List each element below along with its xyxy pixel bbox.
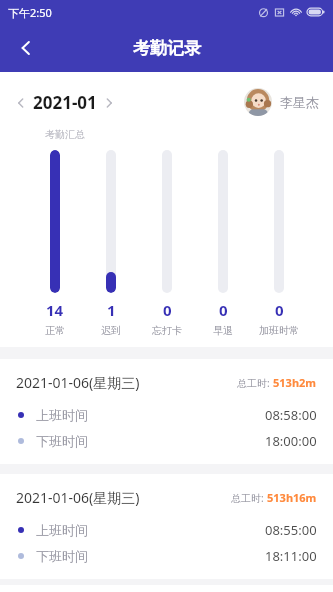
button[interactable]: 2021-01-06(星期三) [0, 359, 333, 464]
staticText: 早退 [213, 324, 233, 337]
other: Previous month [14, 96, 28, 110]
staticText: 513h2m [273, 375, 317, 390]
staticText: 513h16m [267, 490, 317, 505]
other: Next month [102, 96, 116, 110]
staticText: 18:00:00 [265, 432, 317, 450]
staticText: 0 [163, 300, 172, 320]
staticText: 总工时: [237, 376, 273, 390]
staticText: 14 [46, 300, 64, 320]
button[interactable]: Back [8, 30, 44, 66]
staticText: 2021-01-06(星期三) [16, 488, 140, 507]
staticText: 忘打卡 [152, 324, 182, 337]
staticText: 2021-01-06(星期三) [16, 373, 140, 392]
staticText: 18:11:00 [265, 547, 317, 565]
staticText: 上班时间 [36, 522, 88, 538]
staticText: 下班时间 [36, 433, 88, 449]
staticText: 考勤汇总 [45, 128, 85, 141]
staticText: 0 [219, 300, 228, 320]
staticText: 李星杰 [280, 94, 319, 110]
staticText: 0 [275, 300, 284, 320]
button[interactable]: 李星杰 [244, 88, 319, 116]
button[interactable]: Previous month [14, 91, 116, 114]
staticText: 考勤记录 [133, 38, 201, 59]
staticText: 正常 [45, 324, 65, 337]
staticText: 下班时间 [36, 548, 88, 564]
staticText: 1 [107, 300, 116, 320]
button[interactable]: 2021-01-06(星期三) [0, 474, 333, 579]
staticText: 总工时: [231, 491, 267, 505]
staticText: 08:55:00 [265, 521, 317, 539]
staticText: 迟到 [101, 324, 121, 337]
staticText: 08:58:00 [265, 406, 317, 424]
staticText: 加班时常 [259, 324, 299, 337]
staticText: 下午2:50 [8, 5, 52, 20]
staticText: 上班时间 [36, 407, 88, 423]
staticText: 2021-01 [33, 91, 97, 114]
